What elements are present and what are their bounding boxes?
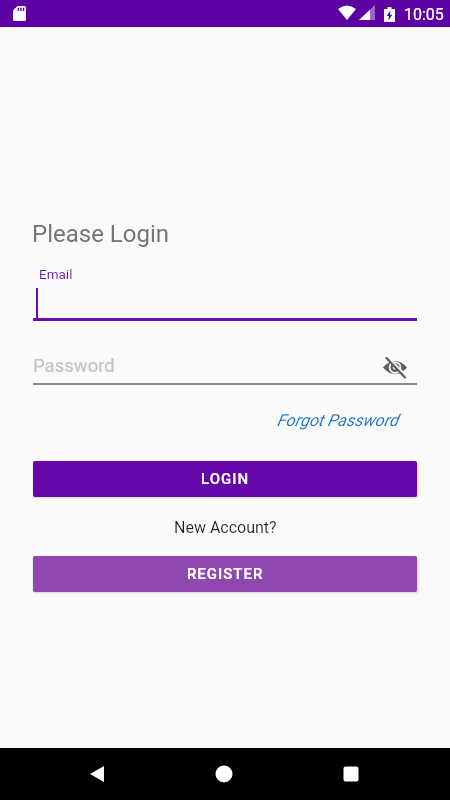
button[interactable]: REGISTER [33,556,417,592]
button[interactable] [383,355,409,380]
staticText: REGISTER [187,565,264,583]
staticText: LOGIN [201,470,250,488]
button[interactable] [77,754,117,794]
staticText: 10:05 [404,5,444,24]
staticText: Email [39,266,73,282]
staticText: Password [33,355,115,377]
staticText: Please Login [32,220,170,248]
button[interactable] [204,754,244,794]
button[interactable] [33,348,382,385]
staticText: New Account? [174,518,277,537]
staticText: Forgot Password [200,411,398,430]
button[interactable] [33,285,417,321]
button[interactable]: Forgot Password [200,411,398,430]
button[interactable]: LOGIN [33,461,417,497]
button[interactable] [331,754,371,794]
